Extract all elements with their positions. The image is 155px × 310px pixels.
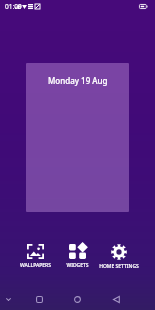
- staticText: WALLPAPERS: [20, 262, 51, 269]
- staticText: 01:09: [5, 2, 22, 11]
- button[interactable]: WALLPAPERS: [15, 242, 56, 271]
- button[interactable]: Monday 19 Aug: [26, 63, 129, 212]
- button[interactable]: WIDGETS: [56, 242, 98, 271]
- button[interactable]: Back: [108, 291, 124, 307]
- button[interactable]: Recents: [31, 291, 47, 307]
- staticText: Monday 19 Aug: [48, 75, 108, 86]
- button[interactable]: Hide: [0, 291, 16, 307]
- staticText: HOME SETTINGS: [99, 263, 139, 270]
- staticText: WIDGETS: [66, 262, 89, 269]
- button[interactable]: Home: [69, 291, 85, 307]
- button[interactable]: HOME SETTINGS: [98, 242, 140, 272]
